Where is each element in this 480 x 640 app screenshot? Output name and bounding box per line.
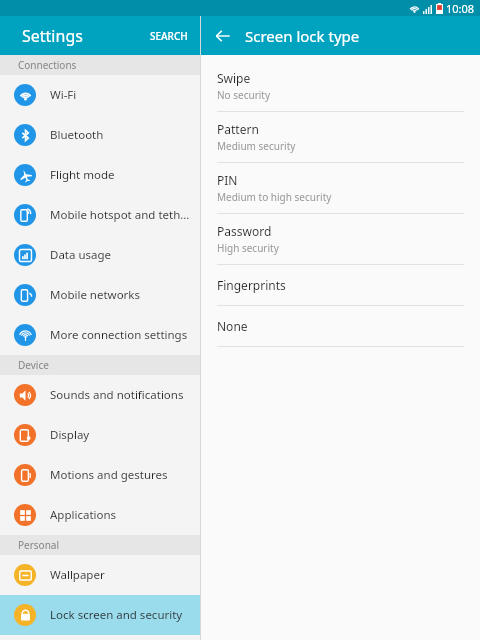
staticText: Connections [18, 58, 77, 72]
staticText: 10:08 [446, 1, 475, 16]
button[interactable]: Display [0, 415, 200, 455]
staticText: Swipe [217, 70, 251, 86]
staticText: Medium to high security [217, 190, 332, 204]
staticText: High security [217, 241, 279, 255]
staticText: Medium security [217, 139, 296, 153]
button[interactable]: Wallpaper [0, 555, 200, 595]
staticText: Fingerprints [217, 277, 286, 293]
staticText: Settings [22, 25, 83, 47]
button[interactable]: Mobile hotspot and tether.. [0, 195, 200, 235]
staticText: Wi-Fi [50, 87, 77, 103]
button[interactable]: Mobile networks [0, 275, 200, 315]
button[interactable]: Back [207, 20, 239, 52]
button[interactable]: Swipe [201, 61, 480, 112]
button[interactable]: None [201, 306, 480, 347]
staticText: Personal [18, 538, 60, 552]
button[interactable]: Lock screen and security [0, 595, 200, 635]
button[interactable]: Fingerprints [201, 265, 480, 306]
staticText: Wallpaper [50, 567, 105, 583]
staticText: SEARCH [150, 29, 188, 43]
staticText: Display [50, 427, 90, 443]
staticText: Bluetooth [50, 127, 104, 143]
button[interactable]: SEARCH [138, 21, 200, 51]
button[interactable]: Wi-Fi [0, 75, 200, 115]
staticText: Mobile hotspot and tether.. [50, 207, 194, 223]
staticText: Screen lock type [245, 26, 360, 46]
button[interactable]: Pattern [201, 112, 480, 163]
button[interactable]: Bluetooth [0, 115, 200, 155]
staticText: Data usage [50, 247, 112, 263]
button[interactable]: Data usage [0, 235, 200, 275]
button[interactable]: Flight mode [0, 155, 200, 195]
button[interactable]: Applications [0, 495, 200, 535]
button[interactable]: Password [201, 214, 480, 265]
button[interactable]: More connection settings [0, 315, 200, 355]
button[interactable]: PIN [201, 163, 480, 214]
staticText: Mobile networks [50, 287, 141, 303]
staticText: Lock screen and security [50, 607, 183, 623]
staticText: PIN [217, 172, 238, 188]
staticText: No security [217, 88, 271, 102]
staticText: More connection settings [50, 327, 188, 343]
staticText: Motions and gestures [50, 467, 168, 483]
staticText: Device [18, 358, 49, 372]
button[interactable]: Sounds and notifications [0, 375, 200, 415]
staticText: Sounds and notifications [50, 387, 184, 403]
button[interactable]: Motions and gestures [0, 455, 200, 495]
staticText: Pattern [217, 121, 259, 137]
staticText: Password [217, 223, 272, 239]
staticText: Applications [50, 507, 117, 523]
staticText: Flight mode [50, 167, 115, 183]
staticText: None [217, 318, 248, 334]
